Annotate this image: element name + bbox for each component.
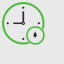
button[interactable]: Clock	[0, 0, 64, 64]
